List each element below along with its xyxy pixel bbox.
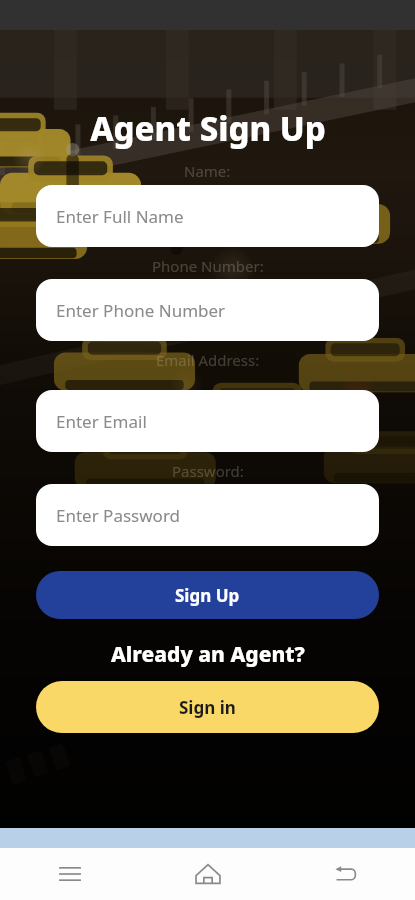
button[interactable]: Enter Full Name (36, 185, 379, 247)
staticText: Enter Phone Number (56, 299, 226, 322)
staticText: Sign in (179, 696, 236, 719)
staticText: Agent Sign Up (90, 106, 326, 151)
staticText: Enter Password (56, 504, 181, 527)
staticText: Phone Number: (152, 256, 264, 276)
button[interactable]: Enter Password (36, 484, 379, 546)
staticText: Already an Agent? (111, 640, 305, 669)
staticText: Password: (172, 461, 244, 481)
button[interactable]: Sign Up (36, 571, 379, 619)
button[interactable]: Home (184, 850, 232, 898)
staticText: Enter Full Name (56, 205, 184, 228)
button[interactable]: Back (322, 850, 370, 898)
button[interactable]: Sign in (36, 681, 379, 733)
button[interactable]: Enter Email (36, 390, 379, 452)
button[interactable]: Enter Phone Number (36, 279, 379, 341)
staticText: Email Address: (156, 350, 260, 370)
staticText: Enter Email (56, 410, 147, 433)
staticText: Sign Up (175, 584, 240, 607)
staticText: Name: (184, 161, 231, 181)
button[interactable]: Recent apps (46, 850, 94, 898)
